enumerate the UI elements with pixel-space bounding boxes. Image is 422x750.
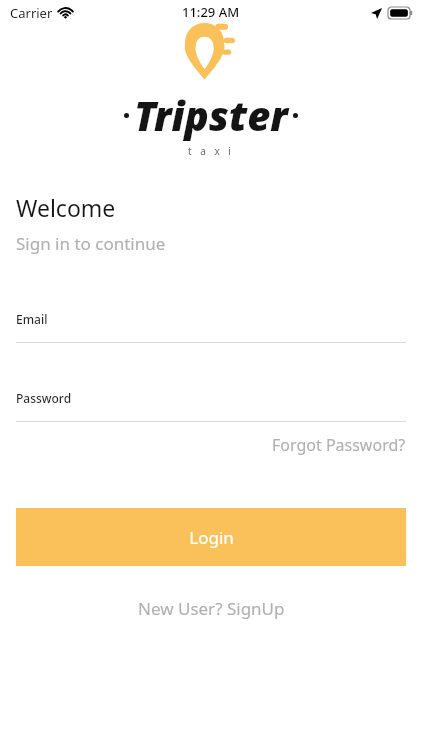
staticText: Carrier [10,4,53,22]
button[interactable]: Email [16,311,406,343]
staticText: Tripster [134,88,288,142]
button[interactable]: Password [16,390,406,422]
button[interactable]: Forgot Password? [272,422,406,460]
staticText: Sign in to continue [16,232,166,255]
button[interactable]: New User? SignUp [126,591,297,626]
staticText: Welcome [16,192,116,223]
staticText: Forgot Password? [272,434,406,456]
staticText: 11:29 AM [182,3,240,21]
staticText: New User? SignUp [138,597,285,620]
staticText: Email [16,311,48,327]
staticText: Login [189,526,234,549]
staticText: Password [16,390,72,406]
button[interactable]: Login [16,508,406,566]
staticText: t a x i [188,144,234,158]
